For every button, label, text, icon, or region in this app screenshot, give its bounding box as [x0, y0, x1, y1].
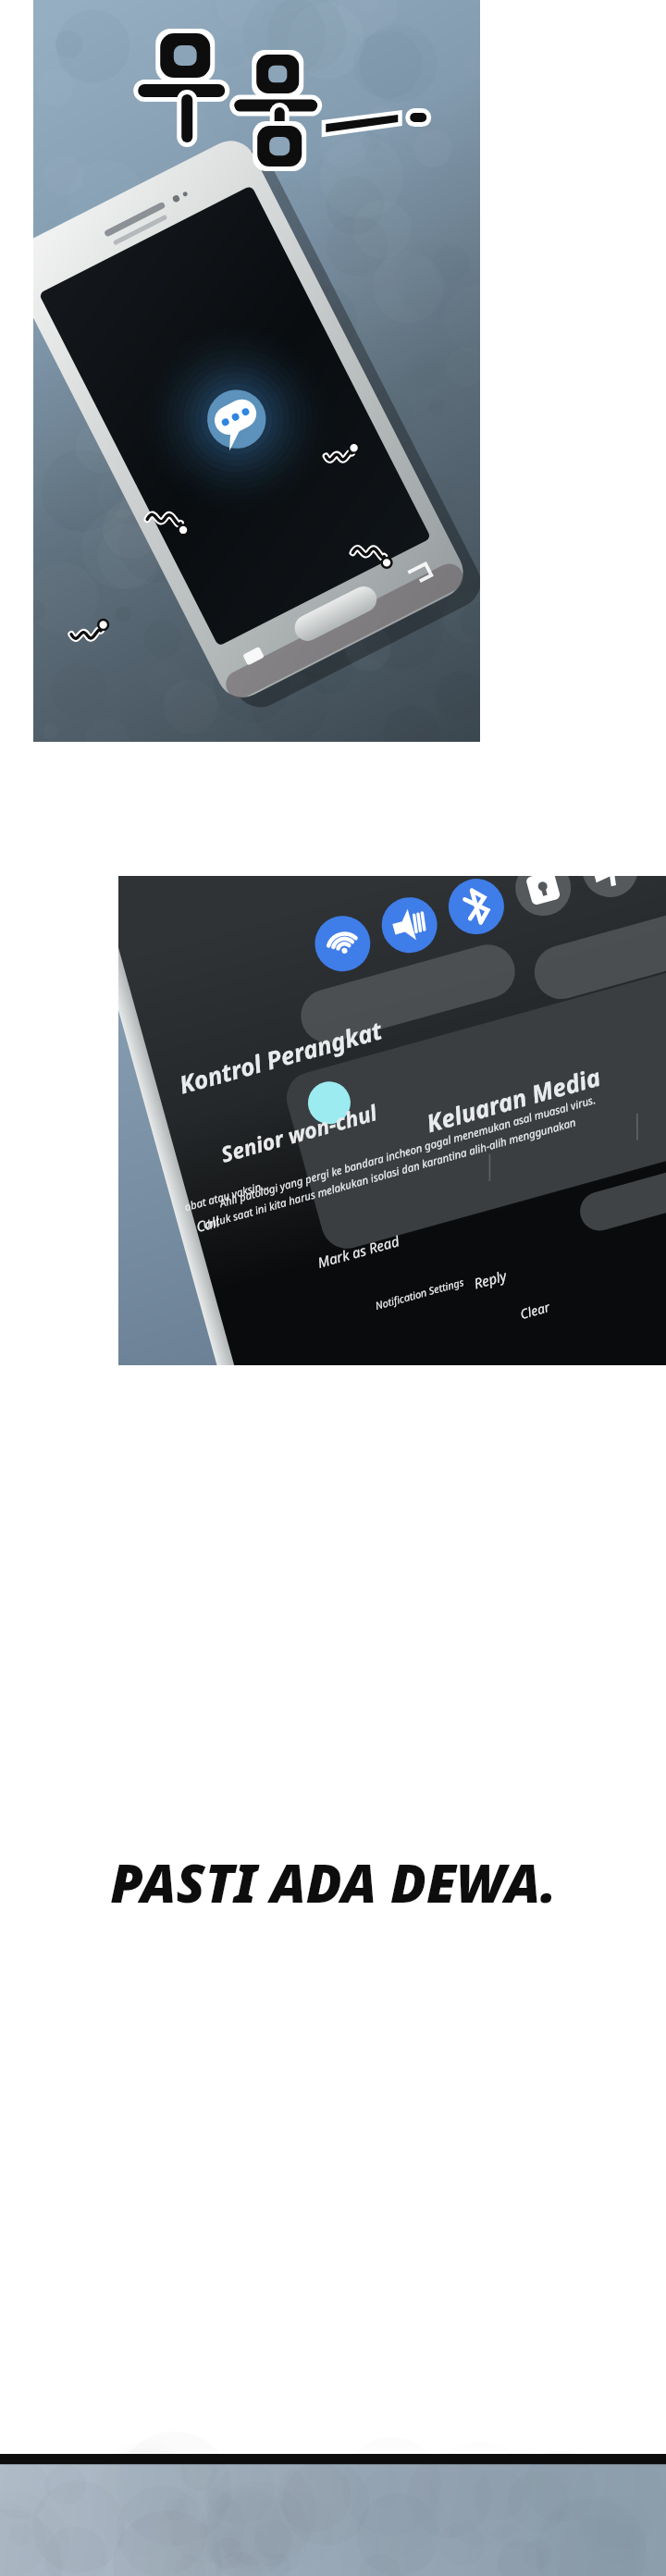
button[interactable]: Kontrol Perangkat — [175, 1013, 385, 1100]
button[interactable]: Reply — [472, 1266, 509, 1293]
staticText: Keluaran Media — [423, 1060, 604, 1139]
staticText: Call — [194, 1212, 222, 1236]
staticText: Notification Settings — [374, 1275, 465, 1312]
staticText: Reply — [472, 1266, 509, 1293]
staticText: Untuk saat ini kita harus melakukan isol… — [201, 1115, 578, 1233]
staticText: obat atau vaksin... — [183, 1177, 271, 1215]
staticText: Senior won-chul — [217, 1097, 380, 1168]
button[interactable]: Senior won-chul — [217, 1097, 380, 1168]
button[interactable]: Notification Settings — [374, 1275, 465, 1312]
button[interactable]: notification line 1 — [218, 1092, 598, 1211]
staticText: Kontrol Perangkat — [175, 1013, 385, 1100]
staticText: Ahli patologi yang pergi ke bandara inch… — [218, 1092, 598, 1211]
staticText: Mark as Read — [315, 1231, 401, 1272]
button[interactable]: Call — [194, 1212, 222, 1236]
staticText: Clear — [518, 1298, 552, 1323]
button[interactable]: Clear — [518, 1298, 552, 1323]
button[interactable]: Mark as Read — [315, 1231, 401, 1272]
staticText: PASTI ADA DEWA. — [110, 1846, 557, 1918]
button[interactable]: notification line 2 — [201, 1115, 578, 1233]
button[interactable]: Keluaran Media — [423, 1060, 604, 1139]
button[interactable]: notification line 3 — [183, 1177, 271, 1215]
